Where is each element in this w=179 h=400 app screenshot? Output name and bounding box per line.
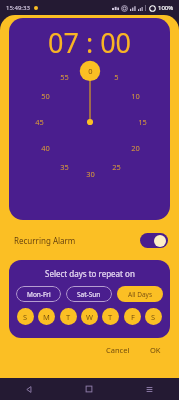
button[interactable]: T xyxy=(60,308,77,325)
staticText: Sat-Sun xyxy=(77,290,101,299)
button[interactable]: Recurring Alarm xyxy=(0,220,179,260)
button[interactable]: Cancel xyxy=(102,343,134,357)
button[interactable]: Home xyxy=(59,378,119,400)
staticText: 55 xyxy=(60,72,69,82)
button[interactable]: Back xyxy=(0,378,59,400)
staticText: Recurring Alarm xyxy=(14,235,76,246)
staticText: 100% xyxy=(158,4,174,12)
staticText: M xyxy=(43,312,50,322)
staticText: 40 xyxy=(41,143,50,153)
button[interactable]: S xyxy=(17,308,34,325)
button[interactable]: F xyxy=(124,308,141,325)
button[interactable]: Mon-Fri xyxy=(16,286,61,302)
staticText: 25 xyxy=(112,162,121,172)
staticText: 45 xyxy=(35,117,44,127)
button[interactable]: T xyxy=(102,308,119,325)
button[interactable]: OK xyxy=(146,343,165,357)
staticText: Select days to repeat on xyxy=(45,268,135,279)
staticText: S xyxy=(151,312,156,322)
button[interactable]: W xyxy=(81,308,98,325)
staticText: 20 xyxy=(131,143,140,153)
staticText: 15:49:33 xyxy=(6,4,30,12)
staticText: S xyxy=(23,312,28,322)
button[interactable]: Recent apps xyxy=(119,378,179,400)
staticText: T xyxy=(66,312,71,322)
other: Recurring alarm toggle xyxy=(140,233,168,248)
staticText: 5 xyxy=(114,72,119,82)
staticText: 0 xyxy=(88,66,93,76)
button[interactable]: M xyxy=(38,308,55,325)
button[interactable]: All Days xyxy=(117,286,163,302)
staticText: All Days xyxy=(128,290,153,299)
button[interactable]: 0 xyxy=(20,50,160,190)
staticText: 50 xyxy=(41,91,50,101)
staticText: T xyxy=(108,312,113,322)
button[interactable]: 07 : 00 xyxy=(48,24,132,61)
staticText: F xyxy=(131,312,135,322)
staticText: 35 xyxy=(60,162,69,172)
staticText: 10 xyxy=(131,91,140,101)
staticText: W xyxy=(86,312,93,322)
staticText: OK xyxy=(150,345,161,355)
button[interactable]: Sat-Sun xyxy=(66,286,112,302)
button[interactable]: S xyxy=(145,308,162,325)
staticText: 30 xyxy=(86,169,95,179)
staticText: 15 xyxy=(138,117,147,127)
staticText: Cancel xyxy=(106,345,130,355)
staticText: Mon-Fri xyxy=(27,290,51,299)
